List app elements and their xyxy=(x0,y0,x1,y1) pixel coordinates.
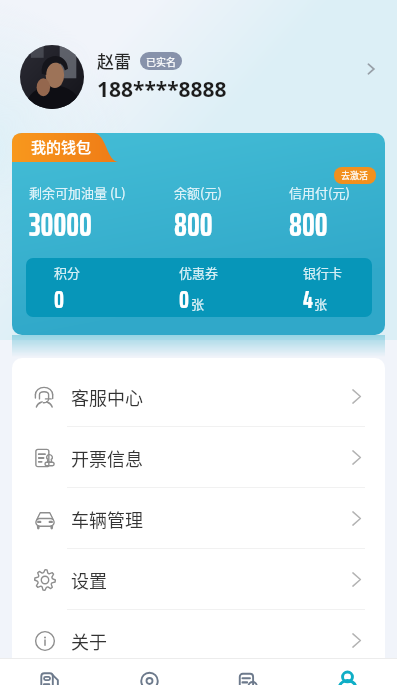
button[interactable]: 订单 xyxy=(199,659,298,685)
staticText: 银行卡 xyxy=(303,263,343,282)
staticText: 信用付(元) xyxy=(289,183,350,202)
staticText: 4 xyxy=(303,280,313,317)
staticText: 优惠券 xyxy=(179,263,219,282)
button[interactable]: 赵雷 xyxy=(0,0,397,133)
staticText: 余额(元) xyxy=(174,183,222,202)
staticText: 积分 xyxy=(54,263,81,282)
staticText: 张 xyxy=(314,294,328,313)
button[interactable]: 去激活 xyxy=(334,167,376,184)
staticText: 关于 xyxy=(71,628,107,654)
button[interactable]: 车辆管理 xyxy=(12,488,385,549)
staticText: 800 xyxy=(174,200,213,250)
staticText: 开票信息 xyxy=(71,445,143,471)
button[interactable] xyxy=(283,179,397,233)
button[interactable] xyxy=(46,258,156,317)
staticText: 30000 xyxy=(29,200,92,250)
button[interactable]: 我的钱包 xyxy=(12,133,119,162)
staticText: 我的钱包 xyxy=(31,136,92,158)
staticText: 188****8888 xyxy=(97,75,227,104)
button[interactable]: 设置 xyxy=(12,549,385,610)
button[interactable]: 客服中心 xyxy=(12,366,385,427)
staticText: 设置 xyxy=(71,567,107,593)
staticText: 800 xyxy=(289,200,328,250)
staticText: 去激活 xyxy=(341,169,369,182)
staticText: 张 xyxy=(191,294,205,313)
button[interactable] xyxy=(23,179,159,233)
button[interactable]: 开票信息 xyxy=(12,427,385,488)
button[interactable]: Profile detail xyxy=(359,57,383,81)
button[interactable]: 我的 xyxy=(298,659,397,685)
staticText: 0 xyxy=(54,280,65,317)
staticText: 赵雷 xyxy=(97,48,131,73)
button[interactable]: 关于 xyxy=(12,610,385,671)
staticText: 已实名 xyxy=(146,54,176,68)
staticText: 客服中心 xyxy=(71,384,143,410)
staticText: 0 xyxy=(179,280,190,317)
staticText: 车辆管理 xyxy=(71,506,143,532)
staticText: 剩余可加油量 (L) xyxy=(29,183,126,202)
button[interactable] xyxy=(295,258,372,317)
button[interactable] xyxy=(171,258,281,317)
button[interactable]: 油站 xyxy=(100,659,199,685)
button[interactable]: 加油 xyxy=(0,659,100,685)
button[interactable] xyxy=(168,179,304,233)
